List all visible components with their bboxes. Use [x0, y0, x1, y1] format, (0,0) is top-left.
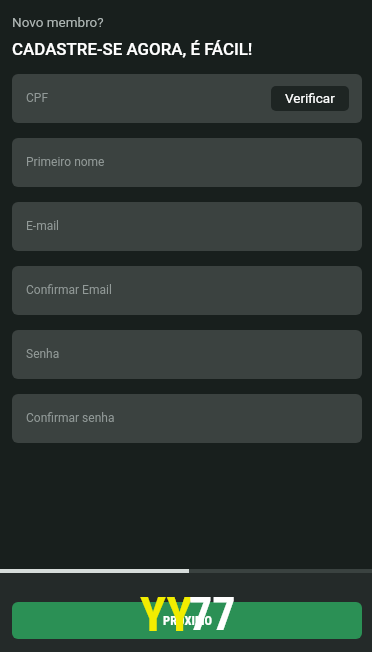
staticText: Senha — [26, 347, 60, 361]
button[interactable]: E-mail — [12, 202, 362, 251]
staticText: CADASTRE-SE AGORA, É FÁCIL! — [12, 39, 253, 59]
button[interactable]: PRÓXIMO — [12, 602, 362, 639]
button[interactable]: Senha — [12, 330, 362, 379]
staticText: Verificar — [285, 90, 335, 106]
button[interactable]: Confirmar senha — [12, 394, 362, 443]
staticText: 77 — [189, 587, 236, 641]
button[interactable]: Primeiro nome — [12, 138, 362, 187]
button[interactable]: Confirmar Email — [12, 266, 362, 315]
staticText: YY — [140, 586, 193, 642]
staticText: PRÓXIMO — [163, 613, 212, 628]
button[interactable]: CPF — [12, 74, 362, 123]
staticText: CPF — [26, 91, 49, 105]
staticText: Confirmar Email — [26, 283, 112, 297]
staticText: Confirmar senha — [26, 411, 115, 425]
staticText: E-mail — [26, 219, 60, 233]
staticText: Primeiro nome — [26, 155, 105, 169]
staticText: Novo membro? — [12, 14, 104, 30]
button[interactable]: Verificar — [271, 86, 349, 111]
